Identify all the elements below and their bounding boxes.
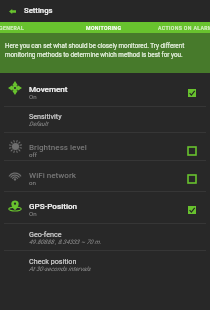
staticText: Geo-fence (29, 230, 62, 238)
staticText: 49.80888 , 8.34333 ~ 70 m. (29, 238, 102, 245)
button[interactable]: Brightness level toggle (184, 144, 200, 158)
staticText: Sensitivity (29, 112, 62, 120)
staticText: Brightness level (29, 142, 87, 151)
button[interactable]: Sensitivity (0, 107, 210, 132)
button[interactable]: MONITORING (86, 25, 122, 31)
staticText: Check position (29, 257, 77, 265)
staticText: GPS-Position (29, 201, 78, 210)
staticText: off (29, 151, 37, 158)
staticText: At 30-seconds intervals (29, 265, 91, 272)
staticText: Here you can set what should be closely … (5, 42, 197, 58)
button[interactable]: ACTIONS ON ALARM (158, 25, 210, 31)
staticText: On (29, 210, 37, 217)
button[interactable]: Geo-fence (0, 224, 210, 250)
button[interactable]: Movement toggle (184, 86, 200, 100)
button[interactable]: GPS-Position (0, 192, 210, 223)
button[interactable]: Movement (0, 73, 210, 106)
staticText: GENERAL (0, 25, 25, 31)
staticText: On (29, 93, 37, 100)
staticText: on (29, 179, 36, 186)
staticText: Default (29, 120, 48, 127)
button[interactable]: GENERAL (0, 25, 25, 31)
button[interactable]: WiFi network (0, 161, 210, 191)
staticText: WiFi network (29, 170, 76, 179)
button[interactable]: Back (0, 0, 24, 22)
button[interactable]: WiFi network toggle (184, 172, 200, 186)
staticText: Movement (29, 84, 68, 93)
staticText: MONITORING (86, 25, 122, 31)
staticText: Settings (24, 6, 53, 15)
button[interactable]: Brightness level (0, 133, 210, 160)
staticText: ACTIONS ON ALARM (158, 25, 210, 31)
button[interactable]: GPS-Position toggle (184, 203, 200, 217)
button[interactable]: Check position (0, 251, 210, 280)
